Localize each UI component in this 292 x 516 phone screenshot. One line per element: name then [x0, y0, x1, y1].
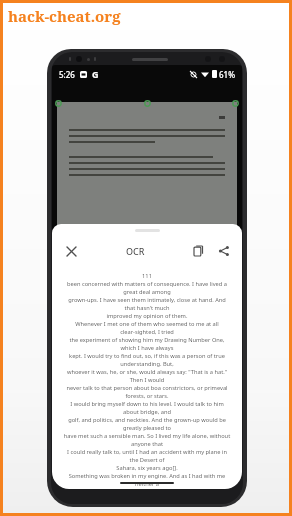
staticText: the experiment of showing him my Drawing… [55, 336, 239, 344]
staticText: Then I would [55, 376, 239, 384]
staticText: grown-ups. I have seen them intimately, … [55, 296, 239, 304]
staticText: 61% [219, 69, 235, 80]
staticText: G [92, 68, 99, 80]
staticText: understanding. But, [55, 360, 239, 368]
staticText: I could really talk to, until I had an a… [55, 448, 239, 456]
staticText: Something was broken in my engine. And a… [55, 472, 239, 480]
staticText: which I have always [55, 344, 239, 352]
staticText: clear-sighted, I tried [55, 328, 239, 336]
staticText: hack-cheat.org [8, 6, 121, 26]
staticText: golf, and politics, and neckties. And th… [55, 416, 239, 424]
staticText: Sahara, six years ago[]. [55, 464, 239, 472]
button[interactable]: Share [213, 240, 235, 262]
staticText: 111 [55, 272, 239, 280]
staticText: never talk to that person about boa cons… [55, 384, 239, 392]
staticText: about bridge, and [55, 408, 239, 416]
staticText: greatly pleased to [55, 424, 239, 432]
staticText: forests, or stars. [55, 392, 239, 400]
staticText: been concerned with matters of consequen… [55, 280, 239, 288]
staticText: improved my opinion of them. [55, 312, 239, 320]
staticText: OCR [126, 245, 145, 257]
staticText: anyone that [55, 440, 239, 448]
staticText: Whenever I met one of them who seemed to… [55, 320, 239, 328]
button[interactable]: Close [59, 239, 83, 263]
button[interactable]: Copy [188, 240, 210, 262]
staticText: that hasn't much [55, 304, 239, 312]
staticText: neither a [55, 480, 239, 488]
staticText: kept. I would try to find out, so, if th… [55, 352, 239, 360]
staticText: 5:26 [59, 69, 75, 80]
staticText: I would bring myself down to his level. … [55, 400, 239, 408]
staticText: the Desert of [55, 456, 239, 464]
staticText: whoever it was, he, or she, would always… [55, 368, 239, 376]
staticText: have met such a sensible man. So I lived… [55, 432, 239, 440]
staticText: great deal among [55, 288, 239, 296]
